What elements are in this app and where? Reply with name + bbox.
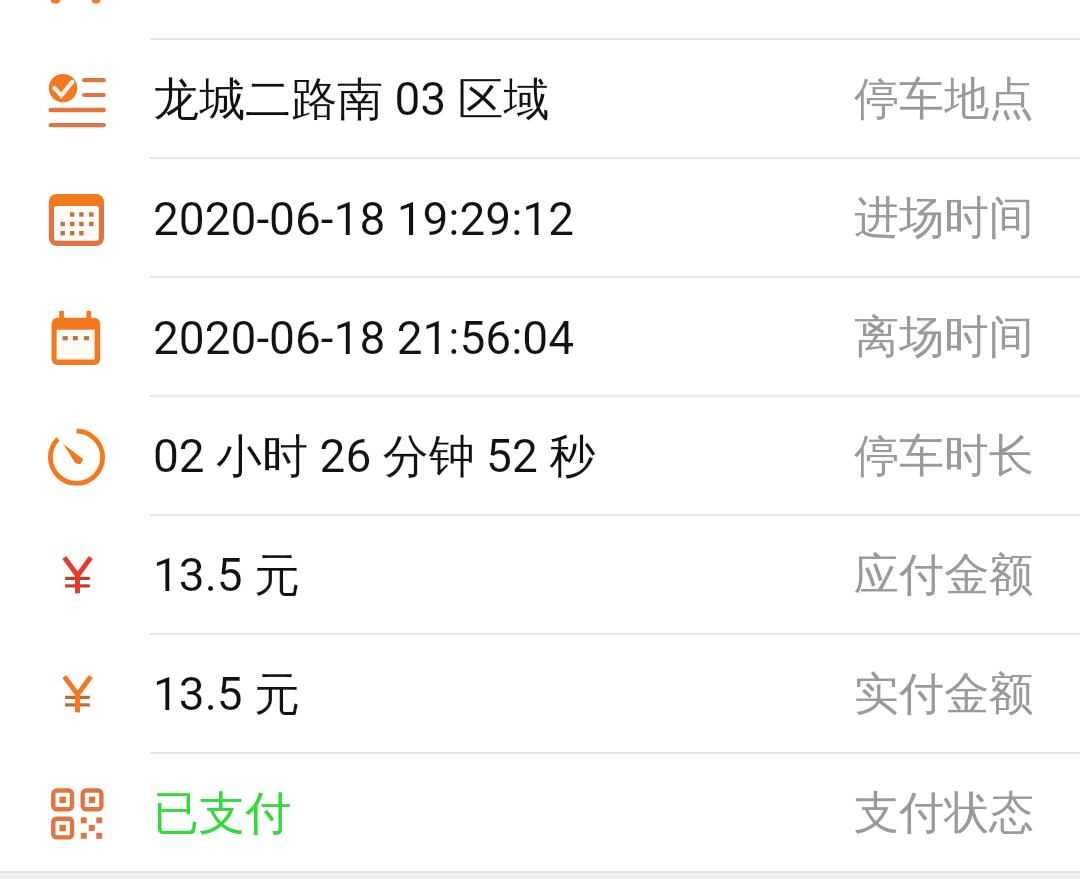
staticText: 支付状态 [854,785,1034,842]
other: Vehicle [0,0,110,14]
staticText: 龙城二路南 03 区域 [153,71,550,129]
other: Amount due [48,547,106,605]
staticText: 进场时间 [854,190,1034,247]
staticText: 已支付 [153,785,291,843]
button[interactable]: Amount due [0,516,1080,635]
staticText: 应付金额 [854,547,1034,604]
button[interactable]: Amount paid [0,635,1080,754]
button[interactable]: Payment status [0,754,1080,873]
staticText: 13.5 元 [153,666,301,724]
other: Payment status [48,785,106,843]
button[interactable]: Exit time [0,278,1080,397]
staticText: 2020-06-18 21:56:04 [153,311,575,365]
staticText: 停车地点 [854,71,1034,128]
staticText: 2020-06-18 19:29:12 [153,192,575,246]
other: Entry time [48,190,106,248]
staticText: 13.5 元 [153,547,301,605]
other: Duration [48,428,106,486]
other: Amount paid [48,666,106,724]
staticText: 离场时间 [854,309,1034,366]
staticText: 实付金额 [854,666,1034,723]
other: Location [48,71,106,129]
staticText: 停车时长 [854,428,1034,485]
button[interactable]: Location [0,40,1080,159]
button[interactable]: Duration [0,397,1080,516]
button[interactable]: Vehicle [0,0,1080,40]
button[interactable]: Entry time [0,159,1080,278]
other: Exit time [48,309,106,367]
staticText: 02 小时 26 分钟 52 秒 [153,428,596,486]
